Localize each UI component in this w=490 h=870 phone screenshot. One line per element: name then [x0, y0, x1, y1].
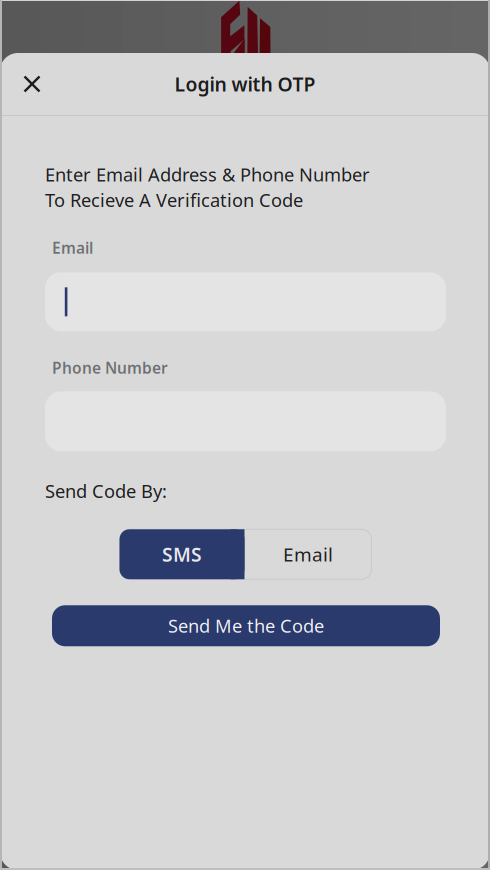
- staticText: Login with OTP: [174, 71, 315, 97]
- staticText: Phone Number: [52, 357, 168, 378]
- button[interactable]: Close: [9, 61, 55, 107]
- staticText: Enter Email Address & Phone Number To Re…: [45, 162, 370, 212]
- button[interactable]: Send Me the Code: [52, 605, 440, 646]
- staticText: Send Me the Code: [168, 613, 324, 638]
- staticText: Email: [52, 237, 93, 258]
- staticText: SMS: [162, 541, 202, 567]
- button[interactable]: Email: [244, 529, 371, 579]
- staticText: Email: [283, 541, 333, 567]
- staticText: Send Code By:: [45, 478, 167, 503]
- button[interactable]: SMS: [119, 529, 244, 579]
